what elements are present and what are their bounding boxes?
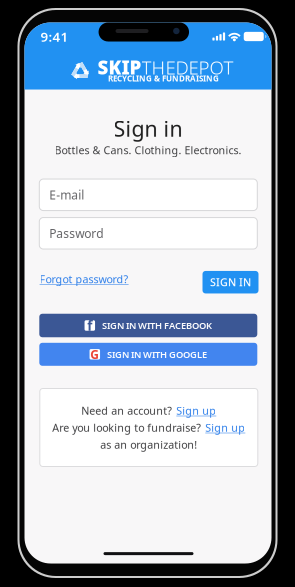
staticText: Need an account? bbox=[81, 403, 172, 418]
staticText: as an organization! bbox=[100, 437, 197, 452]
staticText: SKIP bbox=[97, 55, 141, 80]
staticText: E-mail bbox=[49, 187, 84, 203]
staticText: Sign up bbox=[205, 420, 245, 435]
staticText: f bbox=[87, 317, 92, 334]
staticText: Sign up bbox=[176, 403, 216, 418]
staticText: SIGN IN WITH GOOGLE bbox=[107, 348, 207, 360]
staticText: SIGN IN WITH FACEBOOK bbox=[102, 319, 212, 332]
staticText: Forgot password? bbox=[40, 272, 129, 286]
staticText: Password bbox=[49, 225, 103, 241]
staticText: RECYCLING & FUNDRAISING bbox=[108, 73, 219, 84]
staticText: G bbox=[90, 346, 99, 362]
staticText: SIGN IN bbox=[210, 275, 251, 289]
staticText: Sign in bbox=[113, 114, 182, 143]
button[interactable]: SIGN IN bbox=[202, 271, 258, 293]
button[interactable]: Sign up bbox=[205, 420, 245, 435]
button[interactable]: Forgot password? bbox=[40, 272, 129, 286]
button[interactable]: G bbox=[39, 343, 257, 366]
staticText: 9:41 bbox=[40, 28, 68, 45]
button[interactable]: f bbox=[39, 314, 257, 337]
staticText: THEDEPOT bbox=[141, 55, 233, 80]
staticText: Are you looking to fundraise? bbox=[52, 420, 201, 435]
staticText: Bottles & Cans. Clothing. Electronics. bbox=[54, 143, 241, 157]
button[interactable]: Sign up bbox=[176, 403, 216, 418]
